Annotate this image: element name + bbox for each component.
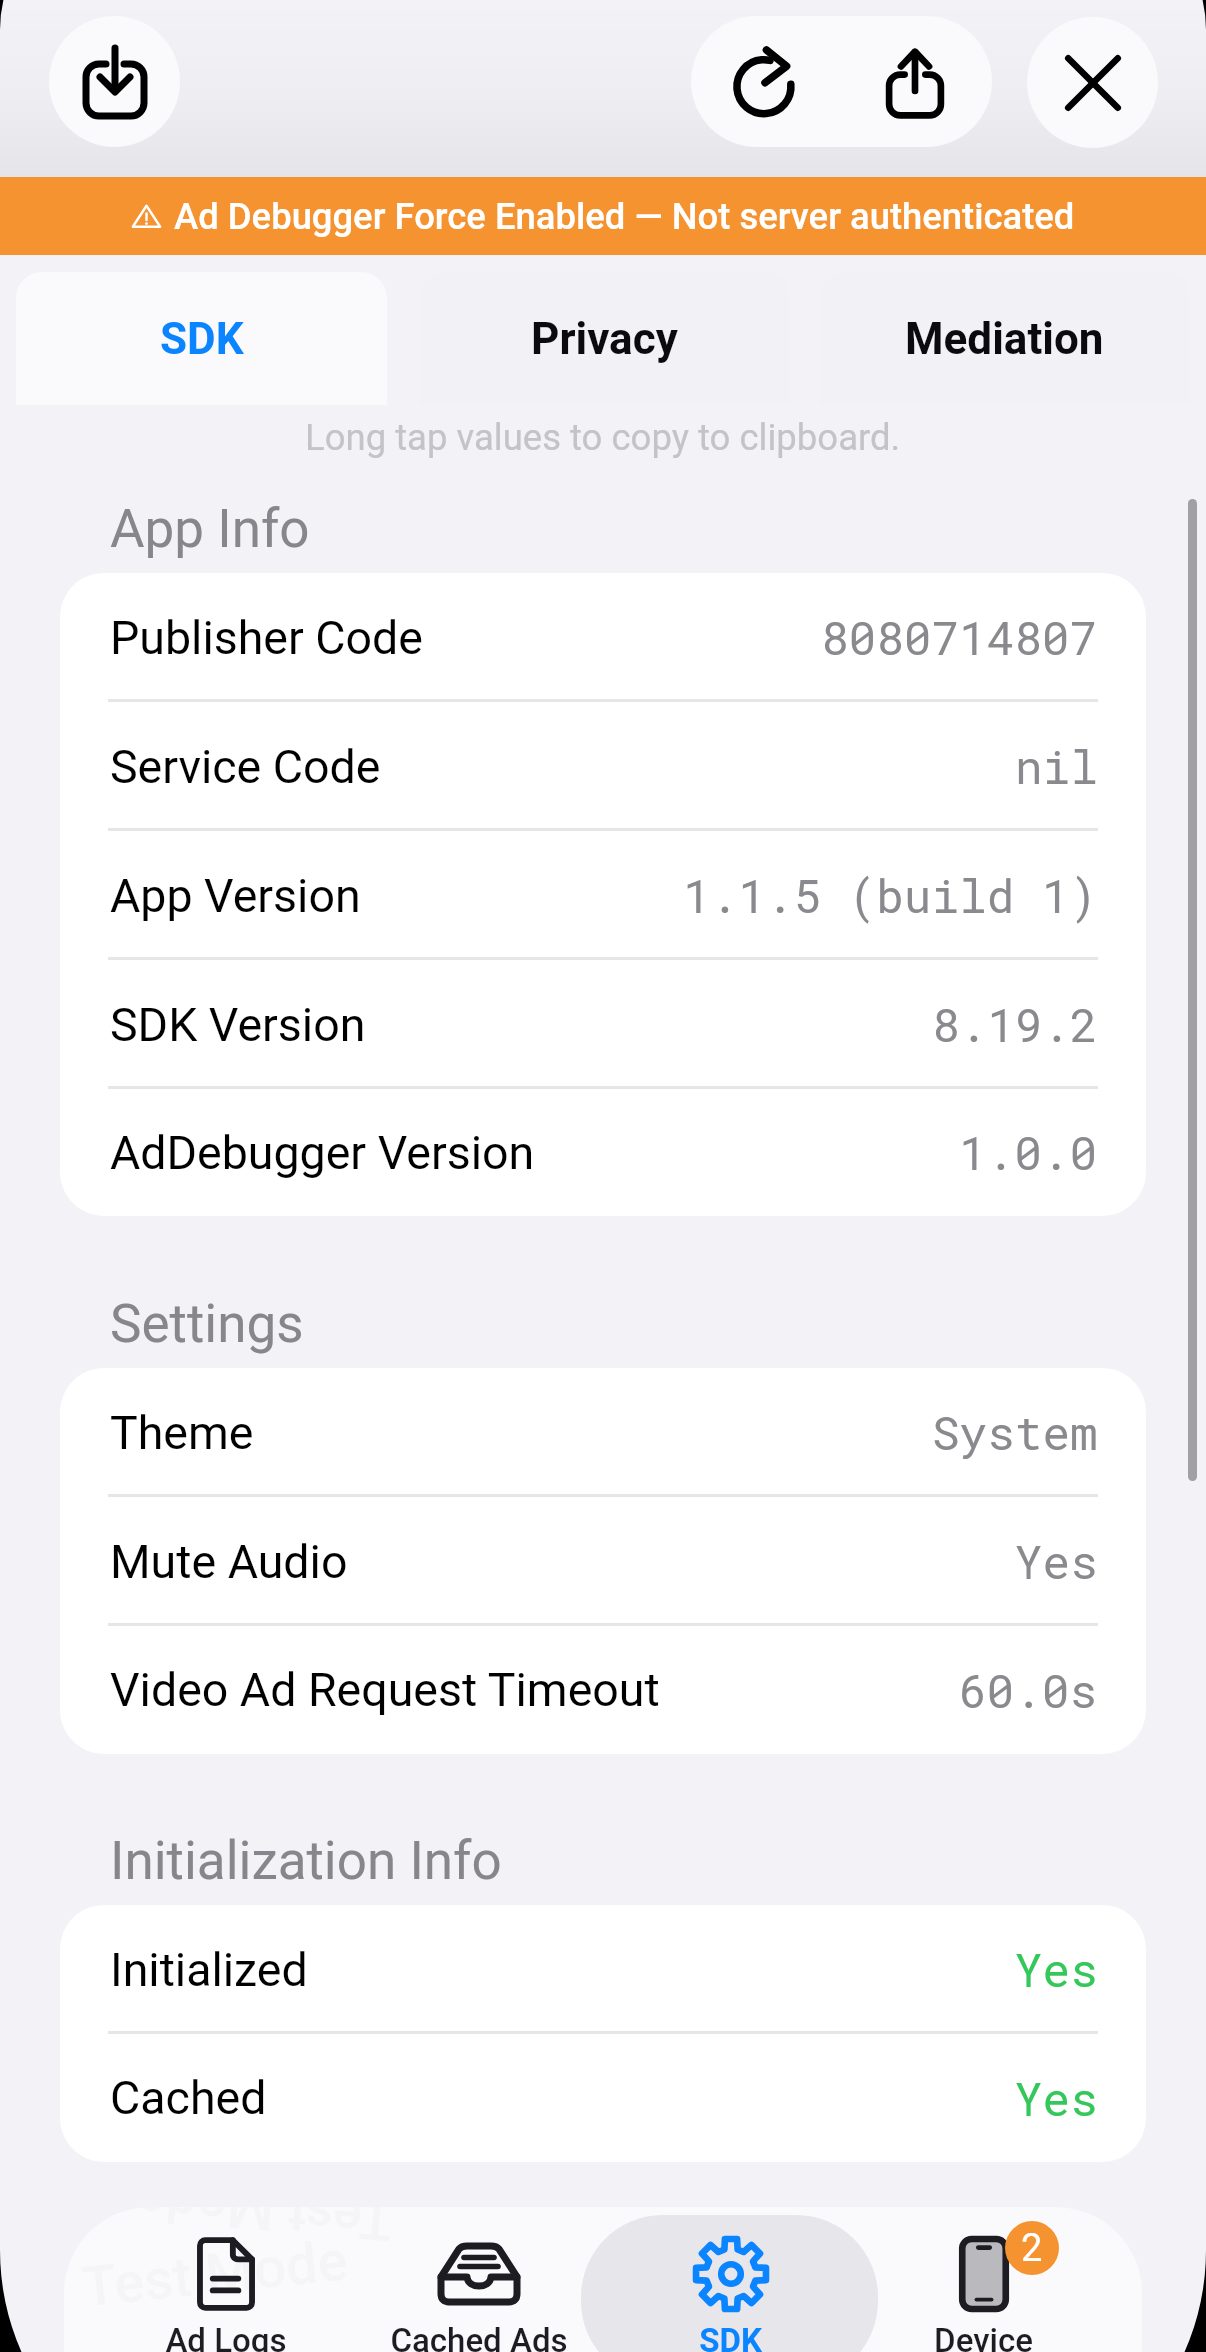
button[interactable]: Initialized bbox=[60, 1905, 1146, 2034]
staticText: 8080714807 bbox=[821, 607, 1098, 668]
staticText: 2 bbox=[1021, 2226, 1043, 2271]
staticText: 8.19.2 bbox=[932, 994, 1098, 1055]
button[interactable]: Close bbox=[1027, 17, 1158, 148]
staticText: Publisher Code bbox=[110, 611, 423, 665]
staticText: Ad Debugger Force Enabled — Not server a… bbox=[174, 195, 1075, 238]
staticText: SDK Version bbox=[110, 998, 366, 1052]
staticText: 1.1.5 (build 1) bbox=[683, 865, 1098, 926]
staticText: Long tap values to copy to clipboard. bbox=[305, 416, 901, 459]
staticText: Yes bbox=[1015, 2068, 1098, 2129]
button[interactable]: Publisher Code bbox=[60, 573, 1146, 702]
staticText: Mute Audio bbox=[110, 1535, 348, 1589]
staticText: Yes bbox=[1015, 1531, 1098, 1592]
staticText: nil bbox=[1015, 736, 1098, 797]
button[interactable]: Mute Audio bbox=[60, 1497, 1146, 1626]
staticText: AdDebugger Version bbox=[110, 1126, 535, 1180]
staticText: Device bbox=[934, 2321, 1033, 2352]
button[interactable]: Cached Ads bbox=[352, 2207, 605, 2352]
button[interactable]: Video Ad Request Timeout bbox=[60, 1626, 1146, 1754]
staticText: System bbox=[932, 1402, 1098, 1463]
staticText: Service Code bbox=[110, 740, 381, 794]
button[interactable]: Service Code bbox=[60, 702, 1146, 831]
button[interactable]: SDK bbox=[604, 2207, 857, 2352]
button[interactable]: Privacy bbox=[419, 272, 790, 405]
button[interactable]: Cached bbox=[60, 2034, 1146, 2162]
button[interactable]: Mediation bbox=[819, 272, 1190, 405]
button[interactable]: Theme bbox=[60, 1368, 1146, 1497]
button[interactable]: Device bbox=[857, 2207, 1110, 2352]
button[interactable]: Share bbox=[838, 16, 992, 147]
staticText: Ad Logs bbox=[165, 2321, 287, 2352]
staticText: Video Ad Request Timeout bbox=[110, 1663, 660, 1717]
staticText: Mediation bbox=[905, 313, 1104, 365]
button[interactable]: SDK bbox=[16, 272, 387, 405]
staticText: App Version bbox=[110, 869, 361, 923]
button[interactable]: Save bbox=[49, 16, 180, 147]
button[interactable]: AdDebugger Version bbox=[60, 1089, 1146, 1216]
staticText: 60.0s bbox=[959, 1660, 1098, 1721]
staticText: Test Mode bbox=[134, 2207, 395, 2253]
staticText: App Info bbox=[110, 498, 310, 560]
staticText: Initialized bbox=[110, 1943, 308, 1997]
staticText: 1.0.0 bbox=[959, 1122, 1098, 1183]
staticText: Privacy bbox=[531, 313, 678, 365]
staticText: Theme bbox=[110, 1406, 254, 1460]
staticText: Initialization Info bbox=[110, 1830, 502, 1892]
staticText: SDK bbox=[699, 2321, 762, 2352]
staticText: Test Mode bbox=[79, 2227, 351, 2321]
staticText: Cached bbox=[110, 2071, 267, 2125]
button[interactable]: App Version bbox=[60, 831, 1146, 960]
staticText: Yes bbox=[1015, 1939, 1098, 2000]
staticText: SDK bbox=[160, 313, 244, 365]
staticText: Settings bbox=[110, 1293, 304, 1355]
button[interactable]: Refresh bbox=[691, 16, 838, 147]
button[interactable]: Ad Logs bbox=[99, 2207, 352, 2352]
staticText: Cached Ads bbox=[390, 2321, 568, 2352]
button[interactable]: SDK Version bbox=[60, 960, 1146, 1089]
